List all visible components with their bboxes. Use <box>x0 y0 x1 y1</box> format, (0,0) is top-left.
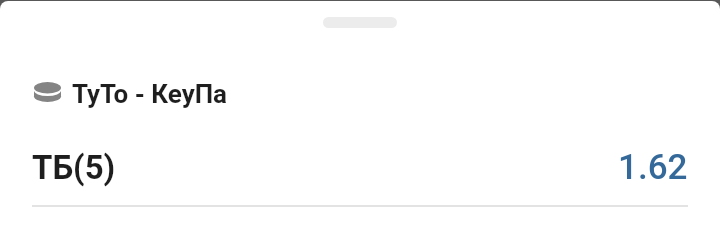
staticText: 1.62 <box>618 147 688 188</box>
button[interactable]: ТуТо - КеуПа <box>0 75 720 113</box>
button[interactable]: ТБ(5) <box>0 143 720 192</box>
staticText: ТуТо - КеуПа <box>72 79 228 109</box>
button[interactable]: Drag handle <box>0 1 720 44</box>
staticText: ТБ(5) <box>32 148 116 187</box>
